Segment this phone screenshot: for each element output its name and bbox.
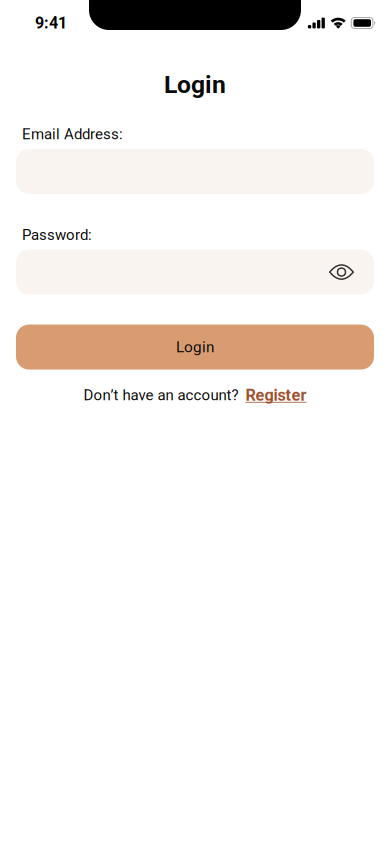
button[interactable]: Show password — [309, 250, 374, 295]
staticText: Login — [176, 338, 214, 356]
staticText: Register — [245, 386, 306, 405]
staticText: Login — [164, 70, 226, 99]
staticText: 9:41 — [35, 13, 67, 32]
staticText: Password: — [22, 226, 92, 244]
staticText: Email Address: — [22, 125, 123, 143]
secureTextField[interactable] — [30, 263, 360, 281]
button[interactable]: Register — [245, 386, 306, 405]
button[interactable]: Login — [16, 325, 374, 370]
staticText: Don’t have an account? — [83, 386, 238, 404]
